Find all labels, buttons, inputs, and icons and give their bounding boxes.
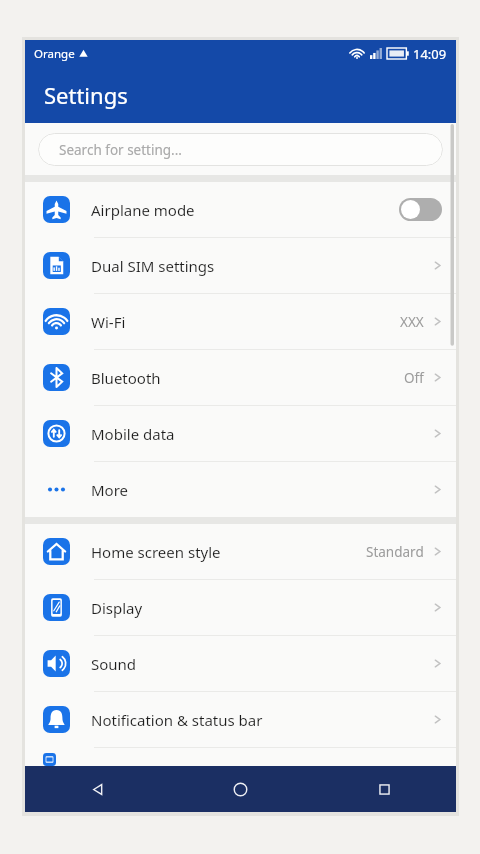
button[interactable]: Airplane mode bbox=[25, 182, 456, 237]
button[interactable]: Notification & status bar bbox=[25, 692, 456, 747]
staticText: Orange bbox=[34, 46, 75, 62]
staticText: Mobile data bbox=[91, 424, 433, 444]
button[interactable]: Home bbox=[169, 766, 312, 812]
staticText: XXX bbox=[400, 313, 424, 331]
button[interactable]: More bbox=[25, 462, 456, 517]
staticText: Airplane mode bbox=[91, 200, 399, 220]
staticText: More bbox=[91, 480, 433, 500]
staticText: Notification & status bar bbox=[91, 710, 433, 730]
staticText: Off bbox=[404, 369, 424, 387]
button[interactable]: Back bbox=[26, 766, 169, 812]
button[interactable]: Wi-Fi bbox=[25, 294, 456, 349]
staticText: Bluetooth bbox=[91, 368, 404, 388]
staticText: Settings bbox=[44, 80, 128, 110]
button[interactable]: Display bbox=[25, 580, 456, 635]
button[interactable]: Mobile data bbox=[25, 406, 456, 461]
staticText: 14:09 bbox=[413, 45, 447, 63]
button[interactable]: Recent apps bbox=[313, 766, 456, 812]
staticText: Sound bbox=[91, 654, 433, 674]
staticText: Search for setting... bbox=[59, 141, 182, 159]
staticText: Wi-Fi bbox=[91, 312, 400, 332]
button[interactable]: Sound bbox=[25, 636, 456, 691]
button[interactable]: Search for setting... bbox=[38, 133, 443, 166]
staticText: Standard bbox=[366, 543, 424, 561]
button[interactable]: Bluetooth bbox=[25, 350, 456, 405]
button[interactable]: Home screen style bbox=[25, 524, 456, 579]
button[interactable]: Dual SIM settings bbox=[25, 238, 456, 293]
staticText: Dual SIM settings bbox=[91, 256, 433, 276]
staticText: Home screen style bbox=[91, 542, 366, 562]
staticText: Display bbox=[91, 598, 433, 618]
button[interactable]: Airplane mode toggle bbox=[399, 198, 442, 221]
